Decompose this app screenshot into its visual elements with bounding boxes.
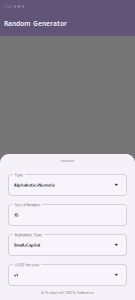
staticText: Alphabetic Type: [14, 232, 42, 237]
button[interactable]: 15 [8, 204, 127, 226]
staticText: Size of Random [14, 202, 40, 207]
button[interactable]: v1 [8, 264, 127, 286]
staticText: Small+Capital [14, 242, 40, 248]
button[interactable]: Alphabetic+Numeric [8, 174, 127, 196]
staticText: UUID Version: [14, 262, 39, 267]
staticText: Type: [14, 172, 23, 177]
button[interactable]: Small+Capital [8, 234, 127, 256]
staticText: Alphabetic+Numeric [14, 182, 55, 188]
staticText: 15 [14, 212, 18, 218]
staticText: A Product of CSMTz Softwares [41, 290, 94, 295]
staticText: Random Generator [4, 19, 67, 28]
staticText: v1 [14, 272, 18, 278]
staticText: 9:41 [5, 4, 12, 9]
